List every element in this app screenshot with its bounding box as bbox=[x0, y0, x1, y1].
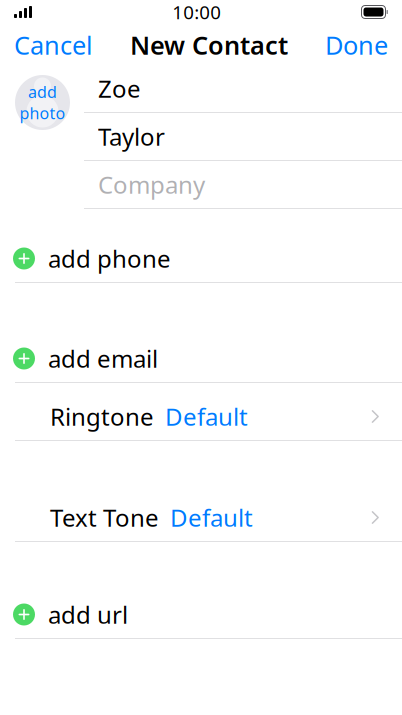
button[interactable]: Ringtone bbox=[0, 393, 402, 441]
staticText: Text Tone bbox=[50, 502, 159, 533]
staticText: add email bbox=[48, 343, 158, 374]
button[interactable]: add email bbox=[0, 335, 402, 383]
staticText: Ringtone bbox=[50, 401, 154, 432]
staticText: photo bbox=[19, 102, 65, 124]
button[interactable]: add phone bbox=[0, 235, 402, 283]
button[interactable]: Text Tone bbox=[0, 494, 402, 542]
staticText: Cancel bbox=[14, 28, 93, 62]
staticText: Company bbox=[98, 169, 205, 200]
staticText: Default bbox=[165, 401, 248, 432]
staticText: New Contact bbox=[130, 28, 288, 62]
button[interactable]: add url bbox=[0, 591, 402, 639]
staticText: add bbox=[28, 81, 57, 102]
staticText: add url bbox=[48, 599, 128, 630]
button[interactable]: Add photo bbox=[15, 75, 70, 130]
staticText: add phone bbox=[48, 243, 171, 274]
staticText: Done bbox=[325, 28, 388, 62]
staticText: Zoe bbox=[98, 73, 141, 104]
staticText: Default bbox=[170, 502, 253, 533]
staticText: 10:00 bbox=[172, 0, 221, 24]
button[interactable]: Cancel bbox=[0, 25, 107, 65]
button[interactable]: Done bbox=[311, 25, 402, 65]
staticText: Taylor bbox=[98, 121, 165, 152]
